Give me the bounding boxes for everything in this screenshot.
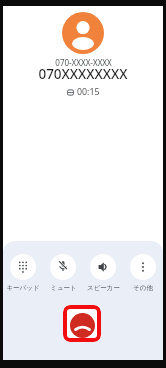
- button[interactable]: [70, 313, 95, 338]
- staticText: ミュート: [50, 284, 77, 292]
- button[interactable]: スピーカー: [83, 254, 123, 292]
- staticText: 00:15: [77, 86, 100, 98]
- button[interactable]: ミュート: [43, 254, 83, 292]
- staticText: スピーカー: [87, 284, 120, 292]
- staticText: キーパッド: [6, 284, 40, 292]
- staticText: その他: [133, 284, 153, 292]
- staticText: 070-XXXX-XXXX: [55, 57, 112, 68]
- button[interactable]: その他: [123, 254, 163, 292]
- staticText: 070XXXXXXXX: [38, 65, 128, 83]
- button[interactable]: キーパッド: [3, 254, 43, 292]
